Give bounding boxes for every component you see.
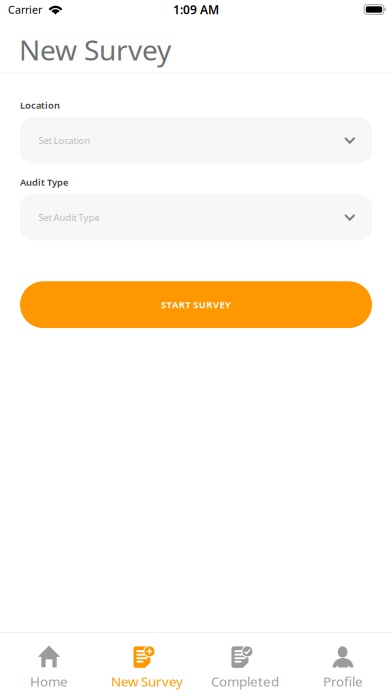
staticText: Audit Type xyxy=(20,176,68,188)
staticText: Set Audit Type xyxy=(38,211,99,223)
staticText: 1:09 AM xyxy=(173,1,219,17)
staticText: Location xyxy=(20,99,60,111)
staticText: Profile xyxy=(323,672,363,690)
staticText: Carrier xyxy=(8,2,42,17)
button[interactable]: New Survey xyxy=(98,633,196,696)
staticText: Completed xyxy=(211,672,279,690)
button[interactable]: Home xyxy=(0,633,98,696)
staticText: Home xyxy=(30,672,68,690)
button[interactable]: Set Audit Type xyxy=(20,194,372,241)
staticText: Set Location xyxy=(38,134,90,146)
button[interactable]: Profile xyxy=(294,633,392,696)
button[interactable]: Set Location xyxy=(20,117,372,164)
button[interactable]: START SURVEY xyxy=(20,281,372,328)
button[interactable]: Completed xyxy=(196,633,294,696)
staticText: New Survey xyxy=(19,31,171,68)
staticText: START SURVEY xyxy=(161,298,231,311)
staticText: New Survey xyxy=(111,672,183,690)
